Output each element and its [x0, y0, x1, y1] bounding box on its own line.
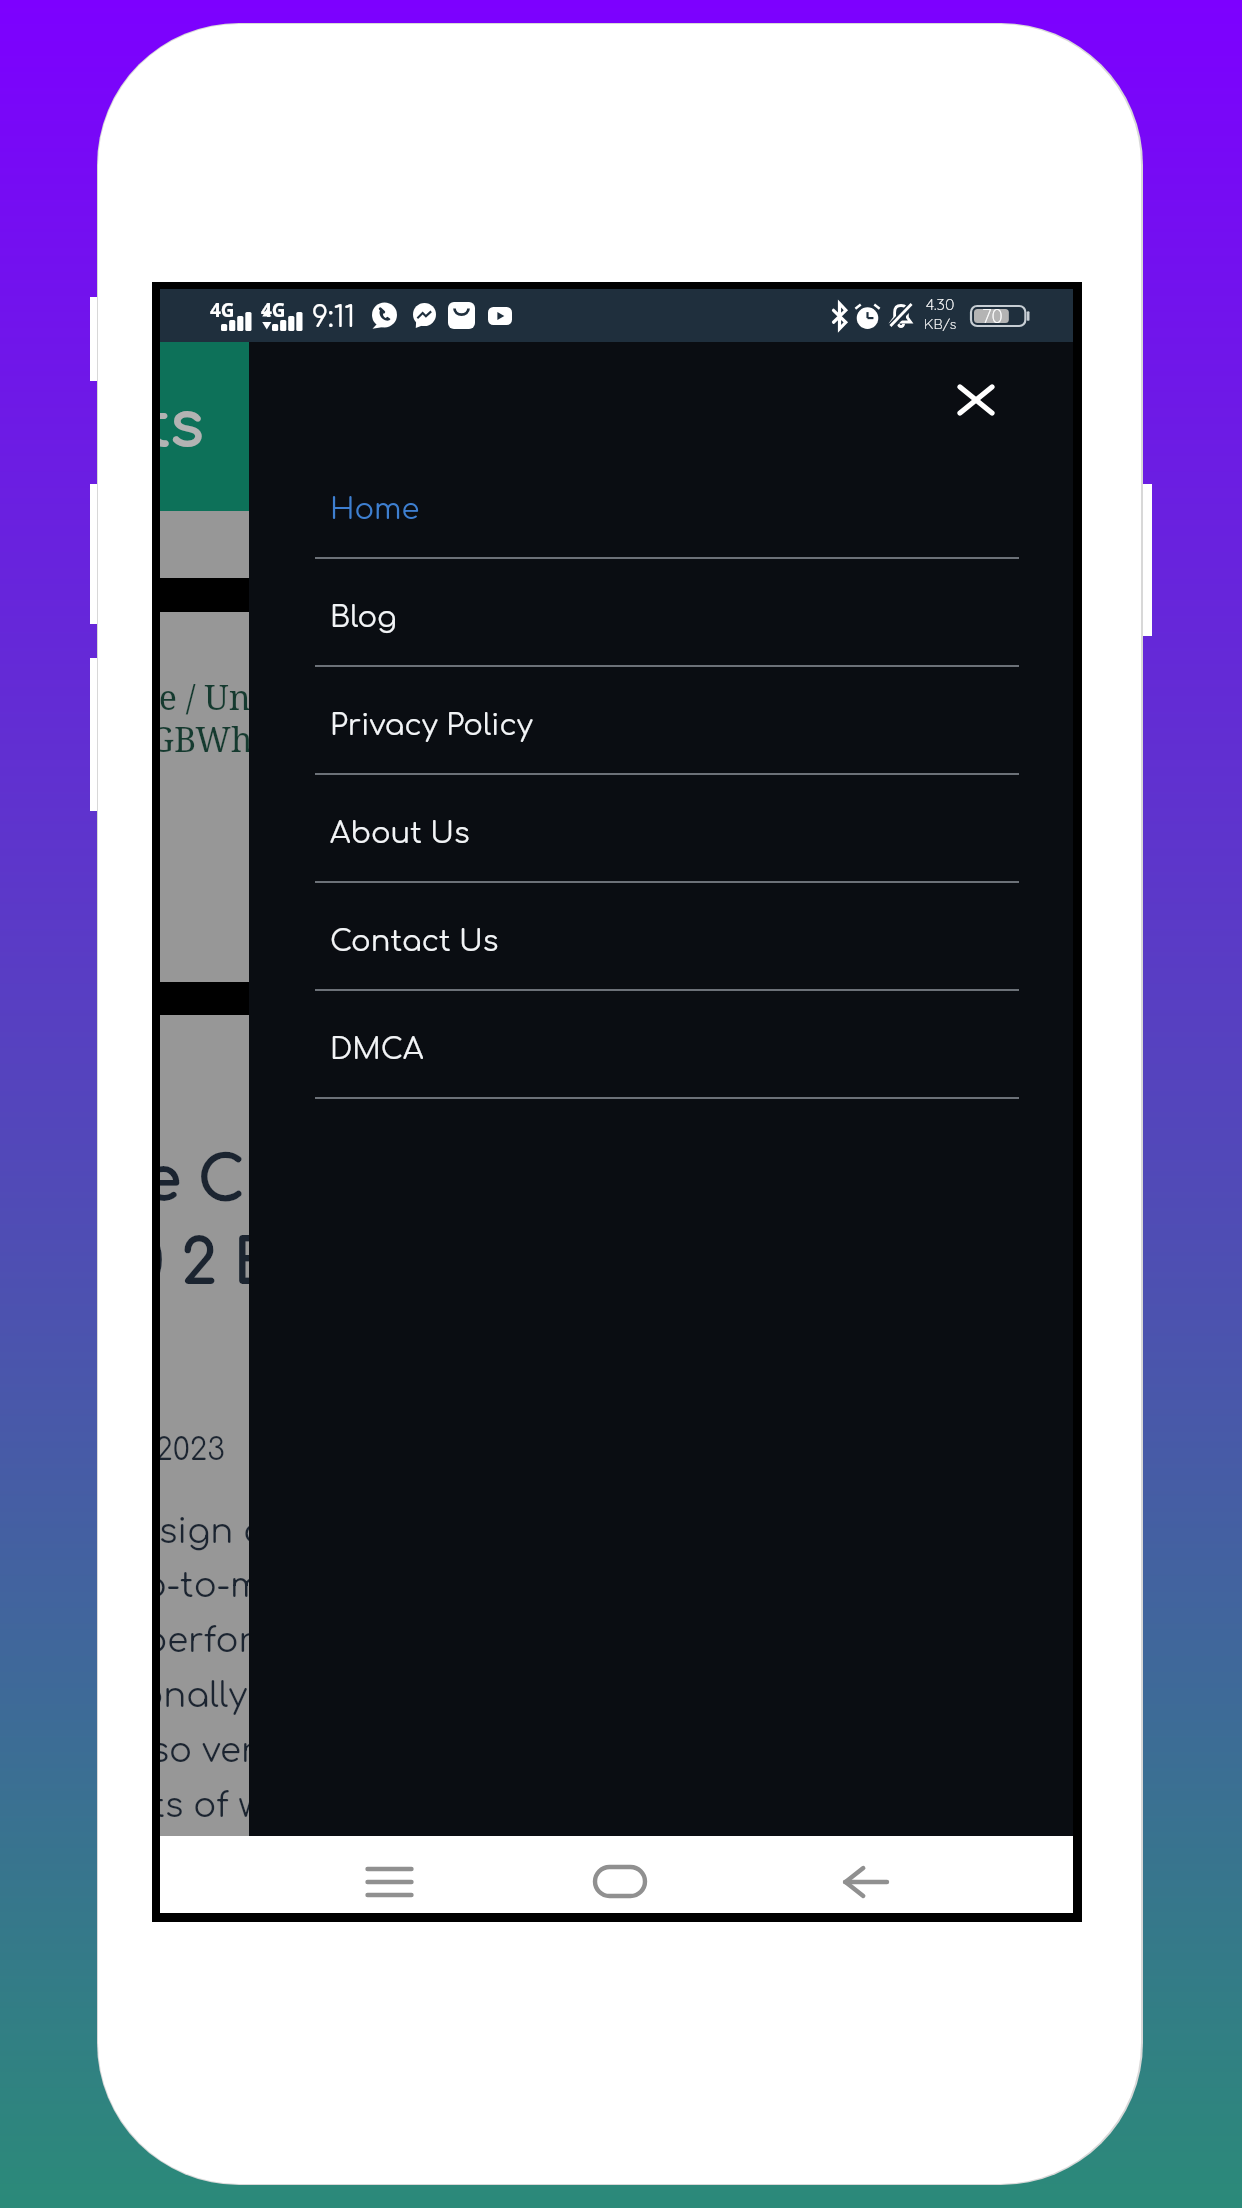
staticText: Home [330, 493, 420, 525]
staticText: Privacy Policy [330, 709, 533, 741]
staticText: DMCA [330, 1033, 424, 1065]
staticText: 70 [982, 304, 1003, 326]
staticText: March 2023 [160, 1434, 225, 1467]
button[interactable]: DMCA [249, 991, 1073, 1099]
button[interactable]: Contact Us [249, 883, 1073, 991]
staticText: Home / Uncategorized / Hid den GBWhatsAp… [160, 674, 525, 762]
button[interactable]: Privacy Policy [249, 667, 1073, 775]
staticText: Blog [330, 601, 397, 633]
staticText: The Chrono V10 2 Bands [160, 1147, 432, 1297]
staticText: 4G [210, 297, 235, 323]
button[interactable]: Home [560, 1836, 680, 1913]
staticText: 4.30 [926, 294, 955, 314]
staticText: KB/s [924, 315, 957, 333]
button[interactable]: About Us [249, 775, 1073, 883]
button[interactable]: Close menu [945, 369, 1007, 431]
staticText: 4G [261, 297, 286, 323]
staticText: Contact Us [330, 925, 499, 957]
button[interactable]: Blog [249, 559, 1073, 667]
button[interactable]: Close navigation drawer [160, 342, 249, 1836]
button[interactable]: Home [249, 451, 1073, 559]
staticText: The design and build quality are top-to-… [160, 1513, 603, 1825]
button[interactable]: Recents [329, 1836, 449, 1913]
staticText: 9:11 [312, 302, 355, 333]
staticText: Gadgets [160, 391, 204, 460]
staticText: About Us [330, 817, 470, 849]
button[interactable]: Back [805, 1836, 925, 1913]
